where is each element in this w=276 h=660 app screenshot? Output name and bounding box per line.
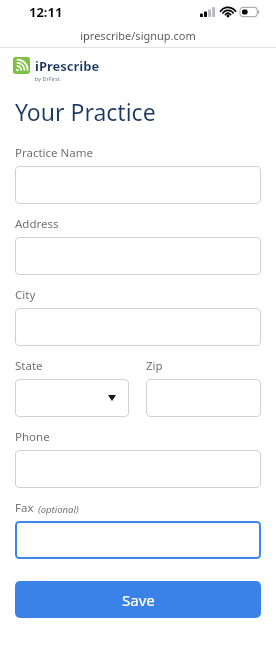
staticText: (optional) [38,503,79,516]
button[interactable]: Save [15,581,261,618]
staticText: Your Practice [15,96,156,127]
staticText: Zip [146,358,163,374]
button[interactable] [146,379,261,417]
button[interactable] [15,450,261,488]
staticText: iprescribe/signup.com [80,28,196,43]
staticText: Practice Name [15,145,93,161]
button[interactable] [15,166,261,204]
staticText: Phone [15,429,50,445]
staticText: iPrescribe [35,57,100,75]
staticText: State [15,358,43,374]
button[interactable] [15,237,261,275]
staticText: by DrFirst [35,75,60,82]
staticText: Save [122,590,155,610]
staticText: City [15,287,36,303]
staticText: Fax [15,500,34,516]
button[interactable] [15,521,261,559]
staticText: 12:11 [29,3,63,21]
staticText: Address [15,216,59,232]
button[interactable] [15,308,261,346]
button[interactable]: Select state [15,379,129,417]
